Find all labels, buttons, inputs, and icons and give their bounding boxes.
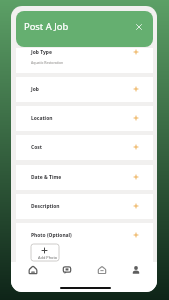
button[interactable]: Job — [16, 77, 153, 102]
button[interactable]: Add Photo — [31, 244, 59, 261]
button[interactable]: Cost — [16, 135, 153, 160]
staticText: Date & Time — [31, 174, 62, 181]
staticText: Job Type — [31, 49, 52, 56]
button[interactable]: Messages — [54, 261, 80, 278]
staticText: Job — [31, 86, 39, 93]
button[interactable]: Profile — [123, 261, 149, 278]
button[interactable]: Description — [16, 194, 153, 219]
staticText: Add Photo — [38, 255, 58, 260]
staticText: Photo (Optional) — [31, 232, 72, 239]
staticText: Cost — [31, 144, 42, 151]
button[interactable]: Home — [20, 261, 46, 278]
button[interactable]: Location — [16, 106, 153, 131]
button[interactable]: My Jobs — [89, 261, 115, 278]
button[interactable]: Post A Job — [16, 11, 153, 47]
button[interactable]: Job Type — [16, 48, 153, 73]
staticText: Aquatic Restoration — [31, 60, 64, 65]
staticText: Description — [31, 203, 60, 210]
button[interactable]: Close — [136, 24, 142, 30]
staticText: Post A Job — [24, 20, 69, 33]
button[interactable]: Date & Time — [16, 165, 153, 190]
staticText: Location — [31, 115, 53, 122]
